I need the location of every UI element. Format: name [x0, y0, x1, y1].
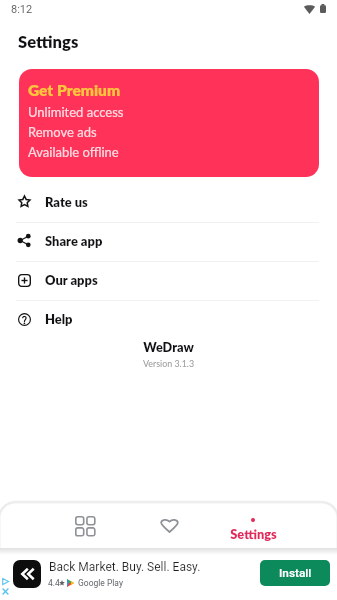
button[interactable]: Get Premium	[19, 69, 319, 177]
button[interactable]: Install	[260, 560, 330, 586]
staticText: Settings	[230, 526, 277, 541]
staticText: Help	[45, 311, 73, 326]
staticText: Install	[279, 566, 312, 580]
button[interactable]: Settings	[221, 503, 285, 548]
staticText: Rate us	[45, 194, 88, 209]
staticText: Our apps	[45, 272, 98, 287]
staticText: 8:12	[11, 3, 33, 16]
button[interactable]: Gallery	[56, 503, 112, 548]
staticText: 4.4	[48, 578, 60, 588]
button[interactable]	[0, 183, 337, 222]
staticText: Remove ads	[28, 124, 97, 140]
button[interactable]	[0, 300, 337, 339]
button[interactable]	[0, 261, 337, 300]
staticText: Settings	[18, 32, 79, 52]
staticText: Google Play	[78, 578, 123, 588]
staticText: Back Market. Buy. Sell. Easy.	[49, 560, 201, 574]
staticText: Share app	[45, 233, 103, 248]
staticText: Get Premium	[28, 81, 121, 100]
staticText: Unlimited access	[28, 104, 124, 120]
staticText: Version 3.1.3	[0, 358, 337, 369]
staticText: WeDraw	[0, 339, 337, 354]
staticText: Available offline	[28, 144, 119, 160]
button[interactable]	[0, 222, 337, 261]
button[interactable]: Favorites	[141, 503, 197, 548]
